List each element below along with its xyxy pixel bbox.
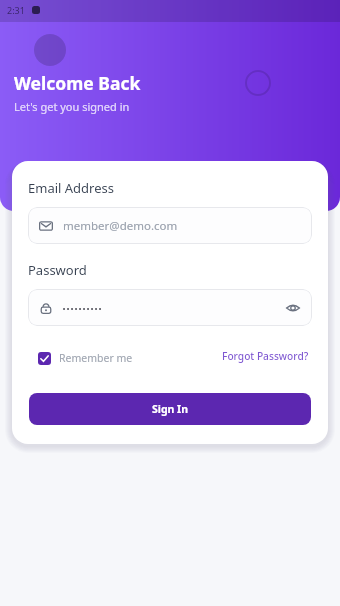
button[interactable]: member@demo.com: [28, 207, 312, 244]
button[interactable]: Forgot Password?: [221, 351, 308, 365]
staticText: Password: [28, 261, 87, 279]
staticText: Remember me: [59, 351, 133, 365]
button[interactable]: Sign In: [29, 393, 311, 425]
staticText: Let's get you signed in: [14, 99, 130, 114]
staticText: Welcome Back: [14, 71, 141, 95]
staticText: 2:31: [7, 4, 25, 16]
button[interactable]: Remember me: [38, 351, 137, 365]
button[interactable]: Show password: [284, 299, 302, 317]
staticText: Sign In: [152, 402, 189, 416]
button[interactable]: Show password: [28, 289, 312, 326]
staticText: member@demo.com: [63, 218, 178, 234]
staticText: Email Address: [28, 179, 114, 197]
